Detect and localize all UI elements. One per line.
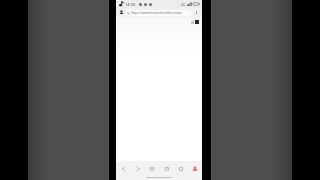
button[interactable]: Profile xyxy=(190,164,199,173)
button[interactable]: Tabs xyxy=(162,164,171,173)
staticText: 4G xyxy=(181,2,186,7)
button[interactable]: Bookmarks xyxy=(176,164,185,173)
staticText: 14:35 xyxy=(125,2,136,7)
button[interactable]: Account xyxy=(118,9,125,16)
button[interactable]: More options xyxy=(193,9,200,16)
button[interactable]: Home xyxy=(147,164,156,173)
button[interactable]: https://www.freetoolsonline.index xyxy=(125,10,192,16)
staticText: https://www.freetoolsonline.index xyxy=(131,11,182,15)
button[interactable]: Forward xyxy=(133,164,142,173)
button[interactable]: Back xyxy=(119,164,128,173)
